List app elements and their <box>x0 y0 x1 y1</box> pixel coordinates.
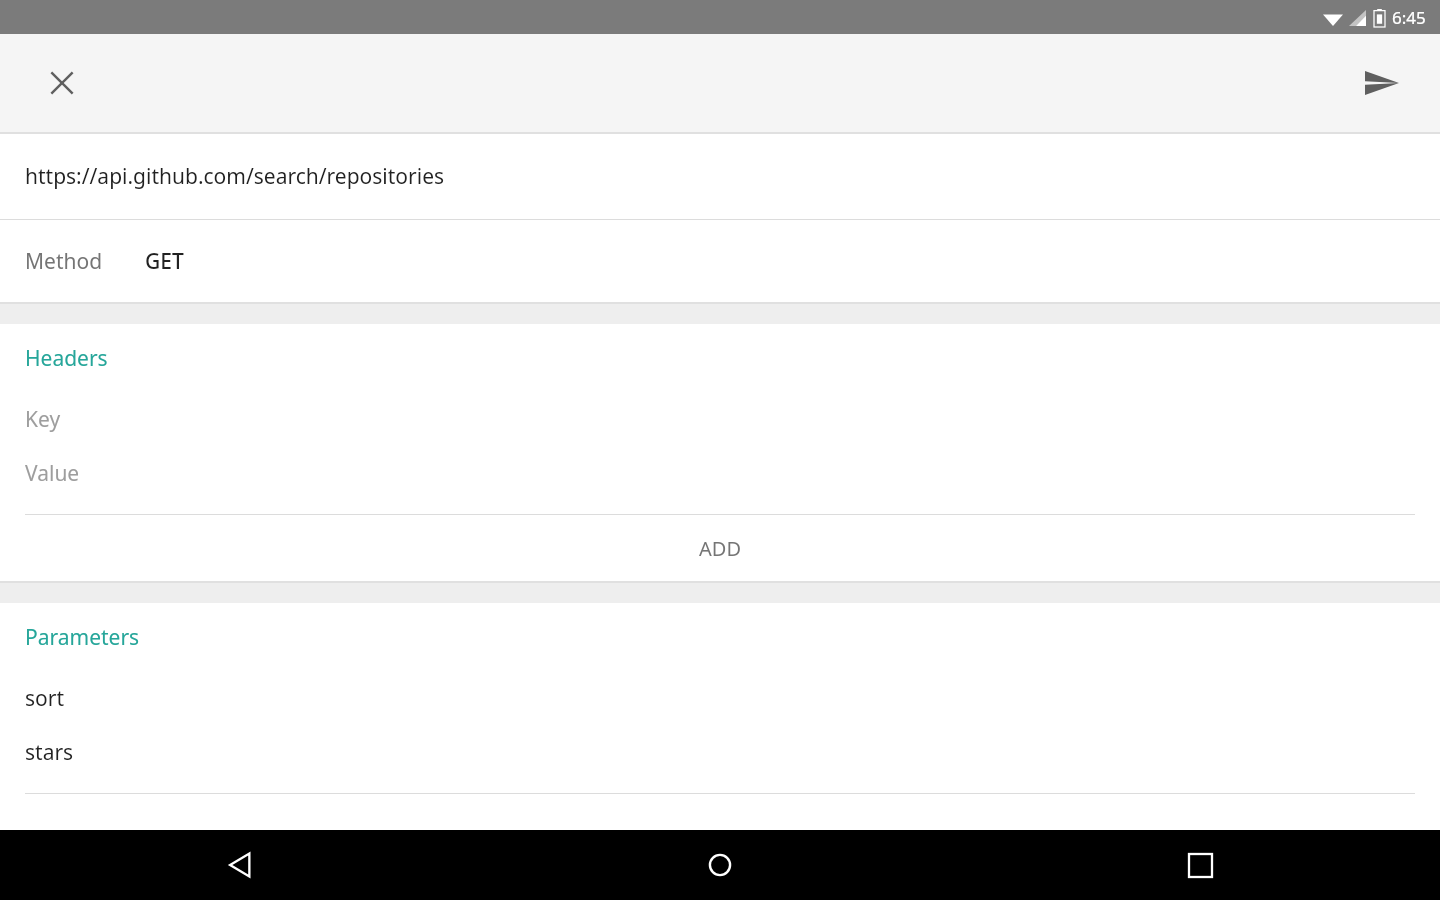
staticText: 6:45 <box>1392 6 1426 29</box>
staticText: Value <box>25 459 80 488</box>
button[interactable]: ADD <box>0 515 1440 581</box>
button[interactable]: https://api.github.com/search/repositori… <box>0 134 1440 219</box>
staticText: ADD <box>699 535 741 562</box>
staticText: Key <box>25 405 61 434</box>
staticText: Method <box>25 247 103 276</box>
button[interactable]: Key <box>0 392 1440 446</box>
staticText: GET <box>145 247 184 276</box>
button[interactable]: Home <box>480 830 960 900</box>
button[interactable]: Close <box>30 51 94 115</box>
button[interactable]: Recent apps <box>960 830 1440 900</box>
staticText: sort <box>25 684 65 713</box>
button[interactable]: Send <box>1350 51 1414 115</box>
button[interactable]: Method <box>0 220 1440 302</box>
staticText: stars <box>25 738 74 767</box>
button[interactable]: stars <box>0 725 1440 779</box>
staticText: Headers <box>25 344 108 373</box>
staticText: https://api.github.com/search/repositori… <box>25 162 445 191</box>
staticText: Parameters <box>25 623 140 652</box>
button[interactable]: Value <box>0 446 1440 500</box>
button[interactable]: sort <box>0 671 1440 725</box>
button[interactable]: Back <box>0 830 480 900</box>
